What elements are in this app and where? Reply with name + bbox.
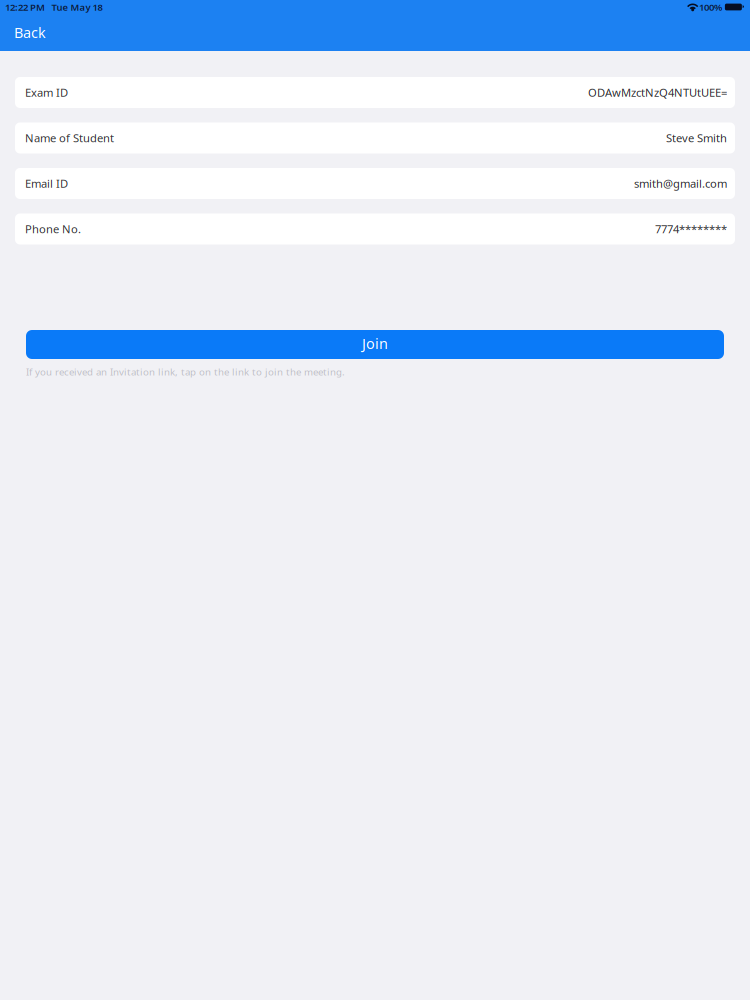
staticText: Email ID [25,176,68,191]
staticText: ODAwMzctNzQ4NTUtUEE= [588,85,727,100]
button[interactable]: Email ID [15,168,735,199]
button[interactable]: Back [0,14,60,51]
staticText: 12:22 PM [5,0,45,14]
staticText: smith@gmail.com [634,176,727,191]
staticText: Join [362,334,388,353]
staticText: Phone No. [25,221,81,237]
button[interactable]: Exam ID [15,77,735,108]
staticText: Exam ID [25,85,68,100]
button[interactable]: Phone No. [15,213,735,244]
button[interactable]: Join [26,330,724,359]
staticText: 7774******** [655,221,727,237]
staticText: Tue May 18 [51,1,102,13]
button[interactable]: Name of Student [15,122,735,153]
staticText: Steve Smith [666,130,727,146]
staticText: Back [14,23,46,42]
staticText: Name of Student [25,130,114,146]
staticText: 100% [699,0,722,14]
staticText: If you received an Invitation link, tap … [26,365,345,378]
